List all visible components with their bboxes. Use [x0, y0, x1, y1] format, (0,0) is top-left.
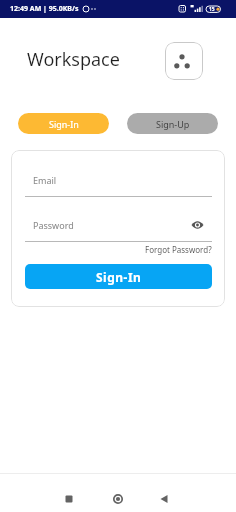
- button[interactable]: [95, 474, 140, 512]
- button[interactable]: [141, 474, 186, 512]
- button[interactable]: Forgot Password?: [145, 244, 212, 255]
- staticText: Sign-In: [49, 118, 79, 130]
- button[interactable]: [191, 220, 204, 230]
- button[interactable]: Sign-In: [18, 113, 109, 134]
- button[interactable]: [165, 42, 203, 80]
- button[interactable]: [46, 474, 91, 512]
- button[interactable]: Sign-In: [25, 264, 212, 289]
- staticText: Workspace: [27, 47, 120, 72]
- staticText: Email: [33, 174, 57, 186]
- button[interactable]: Sign-Up: [127, 113, 218, 134]
- staticText: 15: [209, 6, 215, 13]
- staticText: 12:49 AM | 95.0KB/s: [10, 4, 79, 14]
- staticText: Sign-Up: [156, 118, 190, 130]
- staticText: Sign-In: [96, 269, 142, 285]
- staticText: Password: [33, 219, 74, 231]
